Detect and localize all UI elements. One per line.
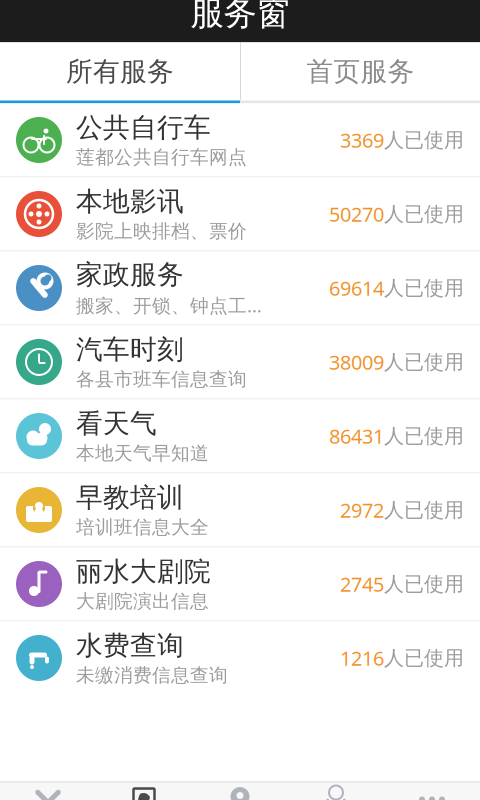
staticText: 人已使用 [384, 202, 464, 226]
button[interactable]: 公共自行车 [0, 103, 480, 176]
staticText: 人已使用 [384, 498, 464, 522]
button[interactable]: 丽水大剧院 [0, 547, 480, 620]
staticText: 人已使用 [384, 350, 464, 374]
staticText: 莲都公共自行车网点 [76, 146, 247, 169]
button[interactable]: 汽车时刻 [0, 325, 480, 398]
button[interactable]: 所有服务 [0, 42, 240, 100]
button[interactable]: 更多 [384, 781, 480, 800]
staticText: 人已使用 [384, 424, 464, 448]
staticText: 3369 [340, 127, 384, 153]
staticText: 人已使用 [384, 646, 464, 670]
staticText: 首页服务 [306, 55, 414, 88]
staticText: 未缴消费信息查询 [76, 664, 228, 687]
staticText: 69614 [329, 275, 384, 301]
staticText: 本地影讯 [76, 185, 184, 218]
staticText: 影院上映排档、票价 [76, 220, 247, 243]
button[interactable]: 我的 [288, 781, 384, 800]
staticText: 所有服务 [66, 55, 174, 88]
staticText: 2972 [340, 497, 384, 523]
staticText: 培训班信息大全 [76, 516, 209, 539]
button[interactable]: 水费查询 [0, 621, 480, 694]
button[interactable]: 首页 [0, 781, 96, 800]
staticText: 大剧院演出信息 [76, 590, 209, 613]
staticText: 服务窗 [190, 0, 289, 34]
staticText: 人已使用 [384, 128, 464, 152]
button[interactable]: 本地影讯 [0, 177, 480, 250]
button[interactable]: 看天气 [0, 399, 480, 472]
staticText: 1216 [340, 645, 384, 671]
staticText: 38009 [329, 349, 384, 375]
staticText: 人已使用 [384, 572, 464, 596]
staticText: 50270 [329, 201, 384, 227]
button[interactable]: 服务窗 [96, 781, 192, 800]
staticText: 2745 [340, 571, 384, 597]
staticText: 水费查询 [76, 629, 184, 662]
staticText: 本地天气早知道 [76, 442, 209, 465]
staticText: 人已使用 [384, 276, 464, 300]
button[interactable]: 首页服务 [241, 42, 480, 100]
staticText: 公共自行车 [76, 111, 211, 144]
staticText: 86431 [329, 423, 384, 449]
staticText: 家政服务 [76, 258, 184, 291]
staticText: 搬家、开锁、钟点工… [76, 293, 262, 318]
button[interactable]: 早教培训 [0, 473, 480, 546]
button[interactable]: 家政服务 [0, 251, 480, 324]
staticText: 各县市班车信息查询 [76, 368, 247, 391]
staticText: 看天气 [76, 407, 157, 440]
staticText: 丽水大剧院 [76, 555, 211, 588]
staticText: 早教培训 [76, 481, 184, 514]
staticText: 汽车时刻 [76, 333, 184, 366]
button[interactable]: 附近 [192, 781, 288, 800]
